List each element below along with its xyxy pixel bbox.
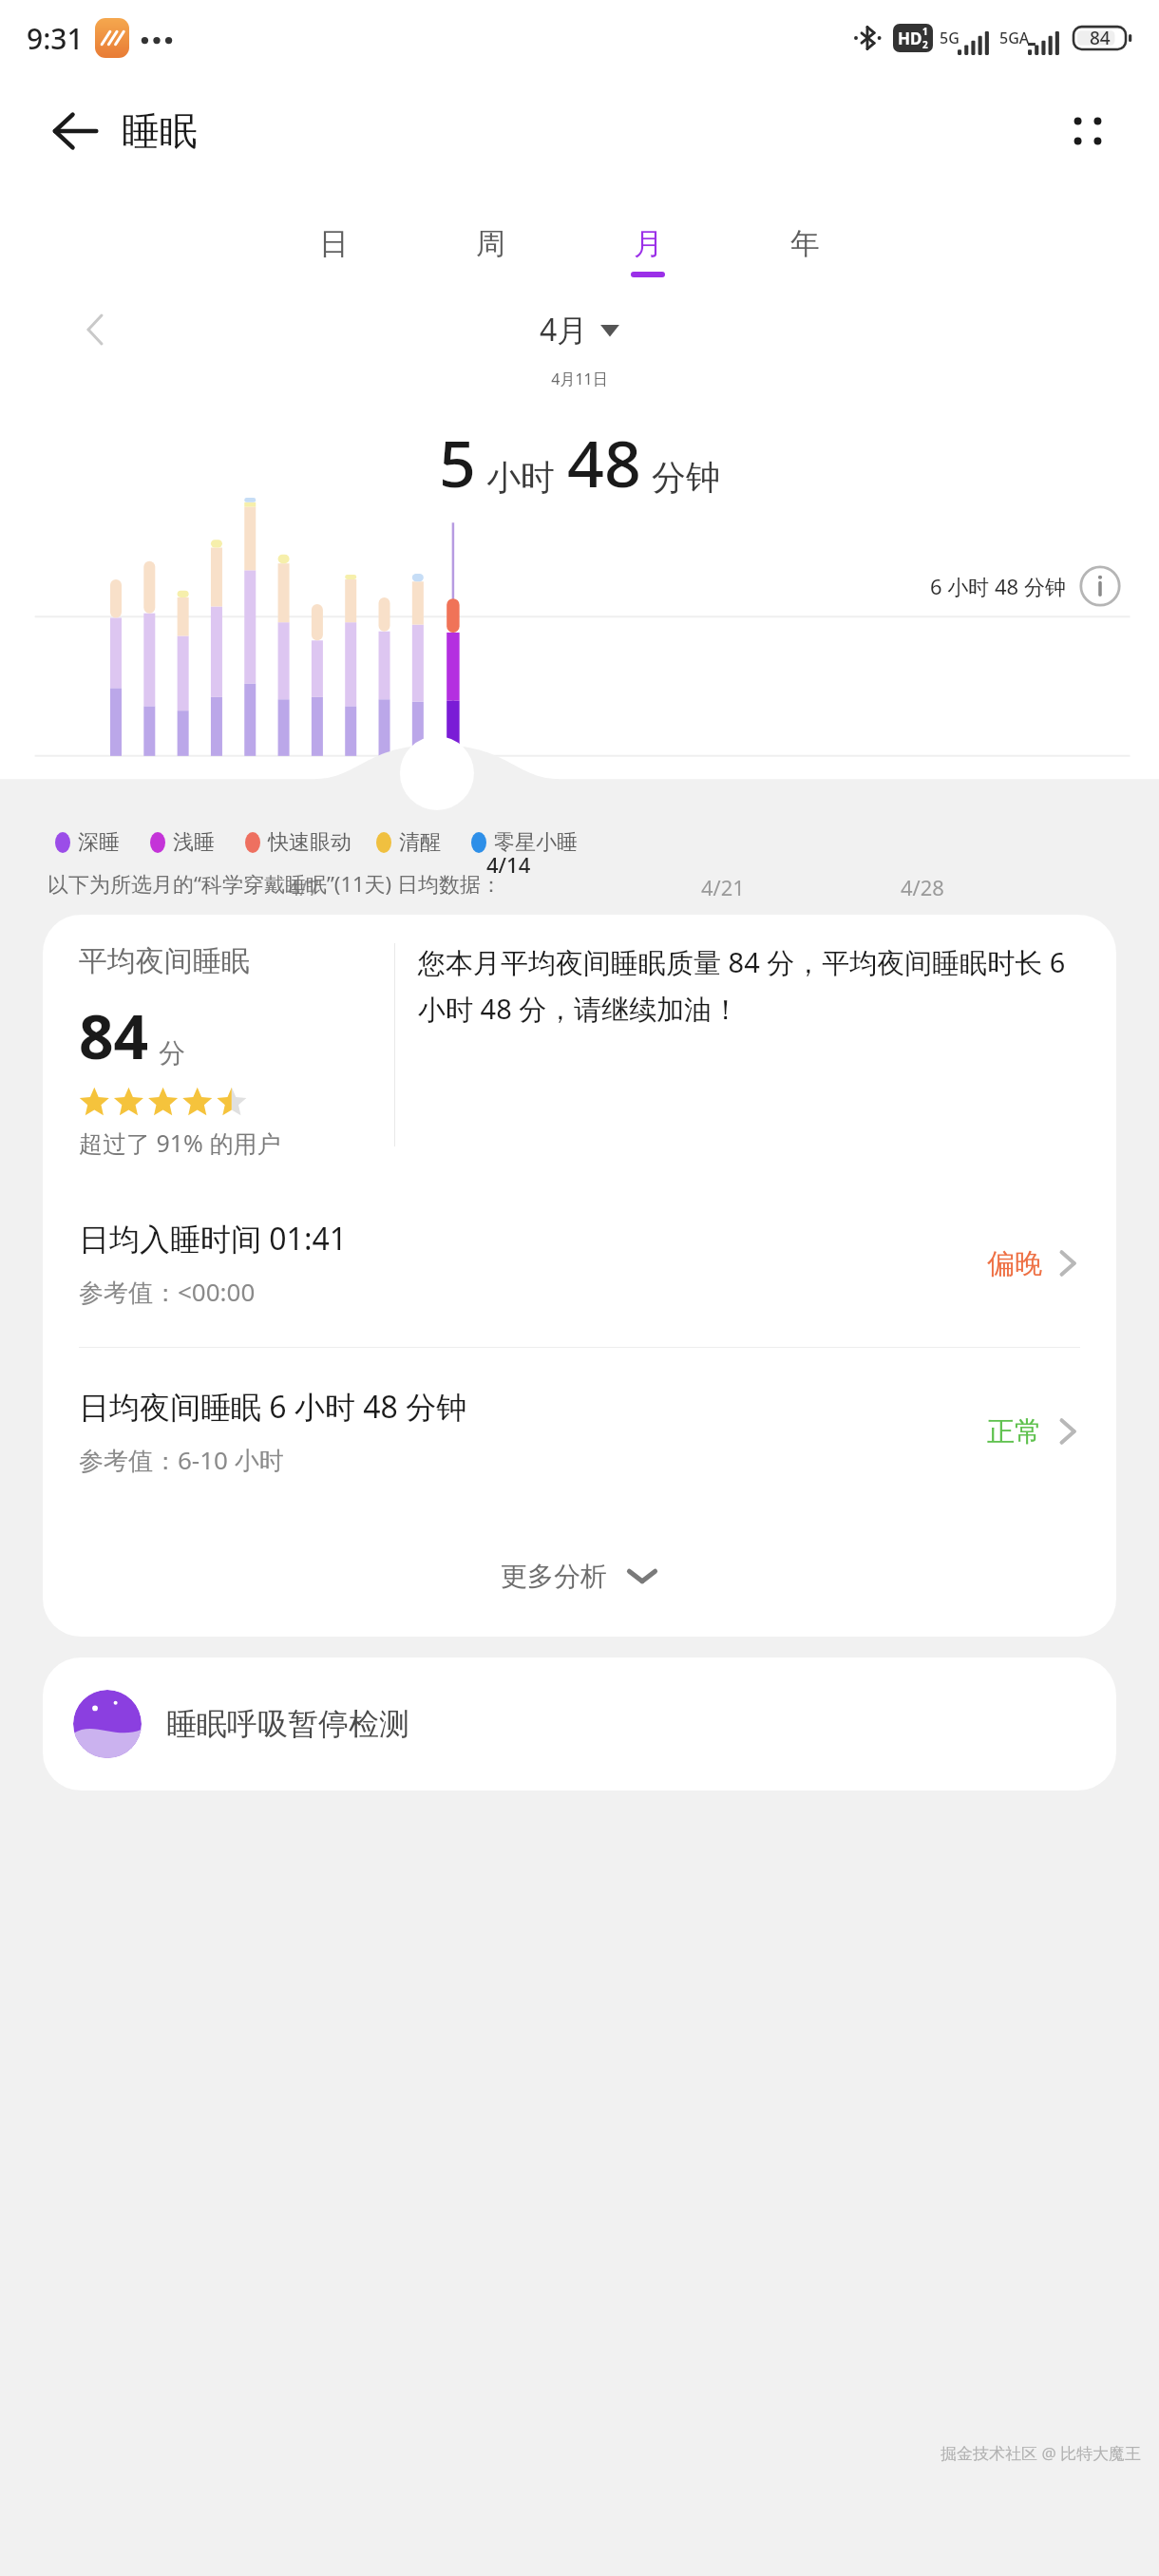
staticText: 睡眠: [122, 107, 198, 155]
staticText: 偏晚: [987, 1246, 1042, 1281]
staticText: 84: [1090, 26, 1111, 50]
button[interactable]: 年: [773, 225, 836, 277]
staticText: 清醒: [399, 829, 441, 856]
button[interactable]: 日均入睡时间 01:41: [43, 1180, 1116, 1347]
staticText: 5GA: [999, 28, 1030, 48]
button[interactable]: 更多分析: [43, 1515, 1116, 1637]
button[interactable]: Info: [1079, 565, 1121, 607]
staticText: 月: [634, 225, 663, 262]
staticText: 以下为所选月的“科学穿戴睡眠”(11天) 日均数据：: [47, 869, 502, 898]
staticText: 5: [439, 418, 476, 506]
staticText: 参考值：<00:00: [79, 1275, 256, 1309]
staticText: 参考值：6-10 小时: [79, 1443, 284, 1477]
button[interactable]: 睡眠呼吸暂停检测: [43, 1657, 1116, 1790]
staticText: 深睡: [78, 829, 120, 856]
button[interactable]: Back: [46, 102, 104, 161]
staticText: 零星小睡: [494, 829, 578, 856]
staticText: 4/28: [901, 873, 944, 901]
staticText: 快速眼动: [268, 829, 351, 856]
staticText: 4/7: [288, 873, 320, 901]
staticText: 您本月平均夜间睡眠质量 84 分，平均夜间睡眠时长 6 小时 48 分，请继续加…: [418, 943, 1095, 1027]
button[interactable]: 日均夜间睡眠 6 小时 48 分钟: [43, 1348, 1116, 1515]
staticText: 更多分析: [501, 1560, 607, 1593]
staticText: 84: [79, 994, 149, 1077]
staticText: 4月: [540, 309, 588, 350]
staticText: 4/21: [701, 873, 745, 901]
button[interactable]: 周: [459, 225, 522, 277]
staticText: 48: [567, 418, 641, 506]
staticText: 正常: [987, 1414, 1042, 1449]
staticText: 周: [476, 225, 505, 262]
button[interactable]: 4月: [540, 309, 620, 350]
staticText: 日均入睡时间 01:41: [79, 1218, 348, 1260]
staticText: 2: [922, 38, 928, 51]
staticText: 5G: [940, 28, 959, 48]
staticText: 4月11日: [0, 369, 1159, 389]
staticText: 睡眠呼吸暂停检测: [166, 1705, 409, 1743]
button[interactable]: Previous month: [72, 306, 120, 353]
button[interactable]: 月: [617, 225, 679, 277]
button[interactable]: More options: [1060, 104, 1115, 159]
staticText: HD: [898, 28, 922, 49]
staticText: 平均夜间睡眠: [79, 943, 250, 979]
button[interactable]: 日: [302, 225, 365, 277]
staticText: 分: [159, 1036, 185, 1070]
staticText: 分钟: [652, 456, 720, 499]
staticText: 1: [922, 25, 928, 38]
staticText: 超过了 91% 的用户: [79, 1127, 281, 1159]
staticText: 日均夜间睡眠 6 小时 48 分钟: [79, 1386, 467, 1428]
staticText: 掘金技术社区 @ 比特大魔王: [940, 2442, 1142, 2464]
staticText: 6 小时 48 分钟: [930, 572, 1066, 600]
staticText: 年: [790, 225, 820, 262]
staticText: 小时: [486, 456, 555, 499]
staticText: 4/14: [486, 850, 531, 879]
staticText: 日: [319, 225, 349, 262]
staticText: 9:31: [27, 19, 84, 58]
staticText: 浅睡: [173, 829, 215, 856]
